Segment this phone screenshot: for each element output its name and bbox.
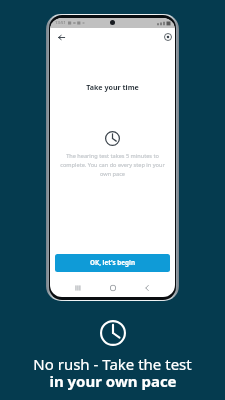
button[interactable]: Back: [54, 30, 68, 44]
staticText: 13:51: [55, 20, 66, 26]
staticText: The hearing test takes 5 minutes to comp…: [59, 152, 166, 178]
button[interactable]: Help: [161, 30, 175, 44]
staticText: in your own pace: [49, 371, 177, 391]
button[interactable]: OK, let's begin: [55, 254, 170, 272]
staticText: Take your time: [50, 82, 175, 92]
staticText: OK, let's begin: [90, 258, 136, 267]
button[interactable]: Back: [140, 283, 154, 293]
button[interactable]: Recents: [71, 283, 85, 293]
button[interactable]: Home: [106, 283, 120, 293]
staticText: No rush - Take the test: [33, 354, 192, 374]
